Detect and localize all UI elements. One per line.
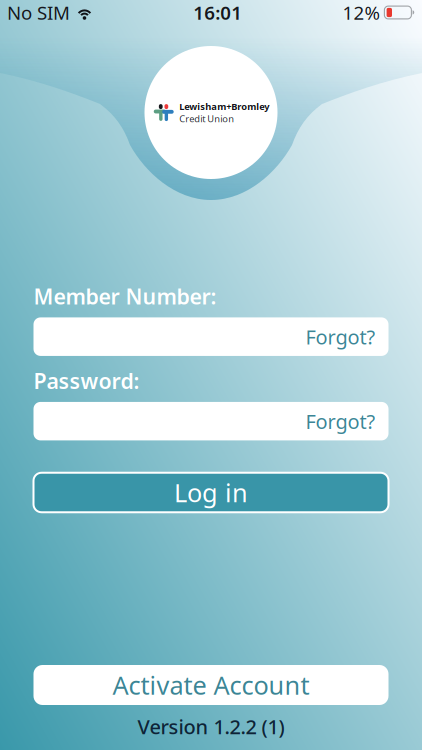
staticText: Forgot?	[305, 408, 375, 434]
staticText: Member Number:	[33, 282, 216, 310]
staticText: Log in	[174, 476, 248, 509]
staticText: No SIM	[7, 0, 70, 25]
staticText: Version 1.2.2 (1)	[137, 713, 284, 740]
staticText: Password:	[33, 367, 139, 395]
staticText: 12%	[342, 0, 380, 25]
button[interactable]: Forgot?	[292, 402, 388, 440]
staticText: Forgot?	[305, 323, 375, 350]
staticText: Activate Account	[112, 668, 309, 702]
button[interactable]: Activate Account	[33, 665, 388, 705]
staticText: Credit Union	[179, 112, 234, 125]
staticText: Lewisham+Bromley	[179, 100, 269, 112]
staticText: 16:01	[193, 0, 242, 25]
button[interactable]: Forgot?	[292, 317, 388, 356]
button[interactable]: Log in	[33, 473, 388, 512]
